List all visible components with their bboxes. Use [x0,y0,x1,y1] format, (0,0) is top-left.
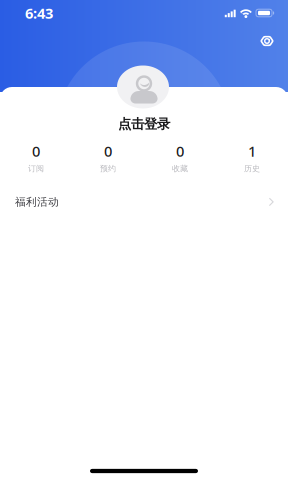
button[interactable]: 0 [0,142,72,173]
staticText: 预约 [100,164,116,173]
staticText: 0 [176,141,184,161]
staticText: 订阅 [28,164,44,173]
button[interactable]: 0 [144,142,216,173]
button[interactable]: Settings [254,28,280,54]
staticText: 收藏 [172,164,188,173]
button[interactable]: 1 [216,142,288,173]
staticText: 0 [104,141,112,161]
button[interactable]: 0 [72,142,144,173]
button[interactable]: 福利活动 [0,185,288,219]
staticText: 历史 [244,164,260,173]
staticText: 6:43 [25,3,53,23]
staticText: 1 [248,141,256,161]
staticText: 福利活动 [15,195,59,208]
staticText: 点击登录 [118,116,170,132]
staticText: 0 [32,141,40,161]
